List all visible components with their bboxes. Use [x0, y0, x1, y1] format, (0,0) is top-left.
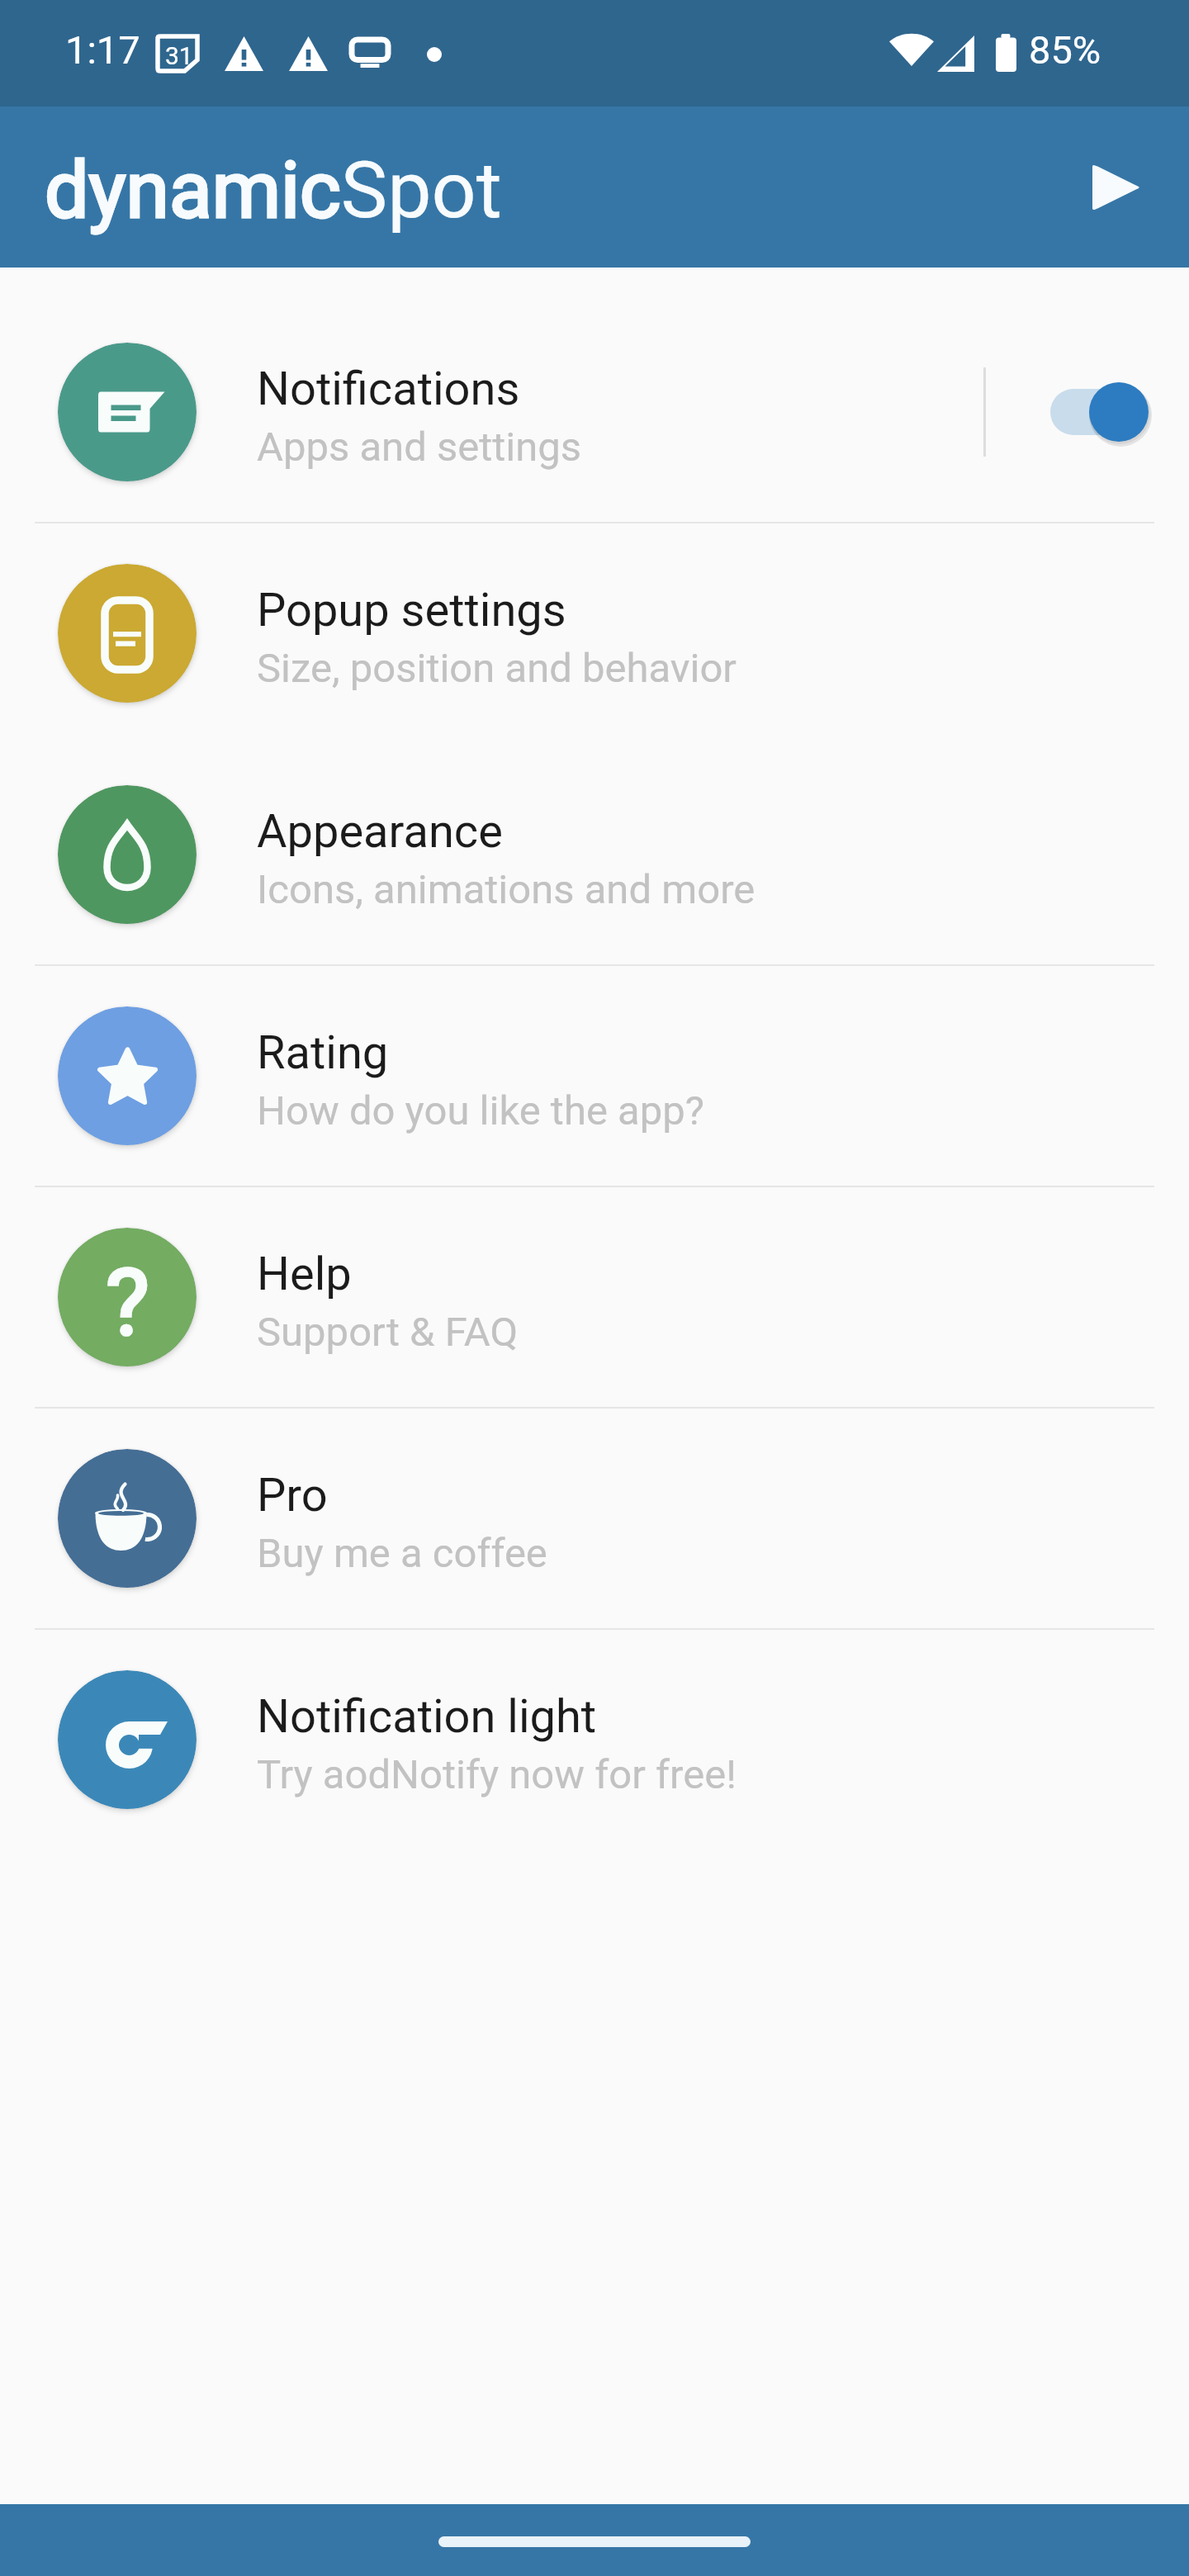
staticText: Try aodNotify now for free!	[257, 1751, 737, 1798]
button[interactable]: Notifications	[0, 302, 1189, 522]
staticText: 85%	[1029, 27, 1101, 73]
staticText: Appearance	[257, 804, 503, 859]
staticText: Buy me a coffee	[257, 1530, 547, 1577]
staticText: How do you like the app?	[257, 1087, 704, 1134]
staticText: Apps and settings	[257, 424, 582, 471]
button[interactable]: Popup settings	[0, 523, 1189, 743]
button[interactable]: ?	[0, 1187, 1189, 1407]
button[interactable]: Notification light	[0, 1630, 1189, 1849]
button[interactable]: Pro	[0, 1409, 1189, 1628]
staticText: Size, position and behavior	[257, 645, 737, 692]
staticText: Support & FAQ	[257, 1309, 519, 1356]
staticText: 1:17	[65, 27, 140, 73]
staticText: ?	[106, 1248, 149, 1357]
staticText: Pro	[257, 1468, 328, 1522]
staticText: Popup settings	[257, 583, 566, 637]
button[interactable]: Play	[1067, 138, 1166, 237]
button[interactable]: Toggle notifications	[983, 302, 1189, 522]
button[interactable]: Appearance	[0, 745, 1189, 964]
staticText: Notifications	[257, 362, 520, 416]
staticText: dynamicSpot	[45, 144, 502, 236]
staticText: Rating	[257, 1025, 389, 1080]
staticText: Help	[257, 1247, 352, 1301]
button[interactable]: Rating	[0, 966, 1189, 1186]
staticText: Notification light	[257, 1689, 597, 1744]
staticText: 31	[165, 41, 193, 70]
staticText: Icons, animations and more	[257, 866, 756, 913]
